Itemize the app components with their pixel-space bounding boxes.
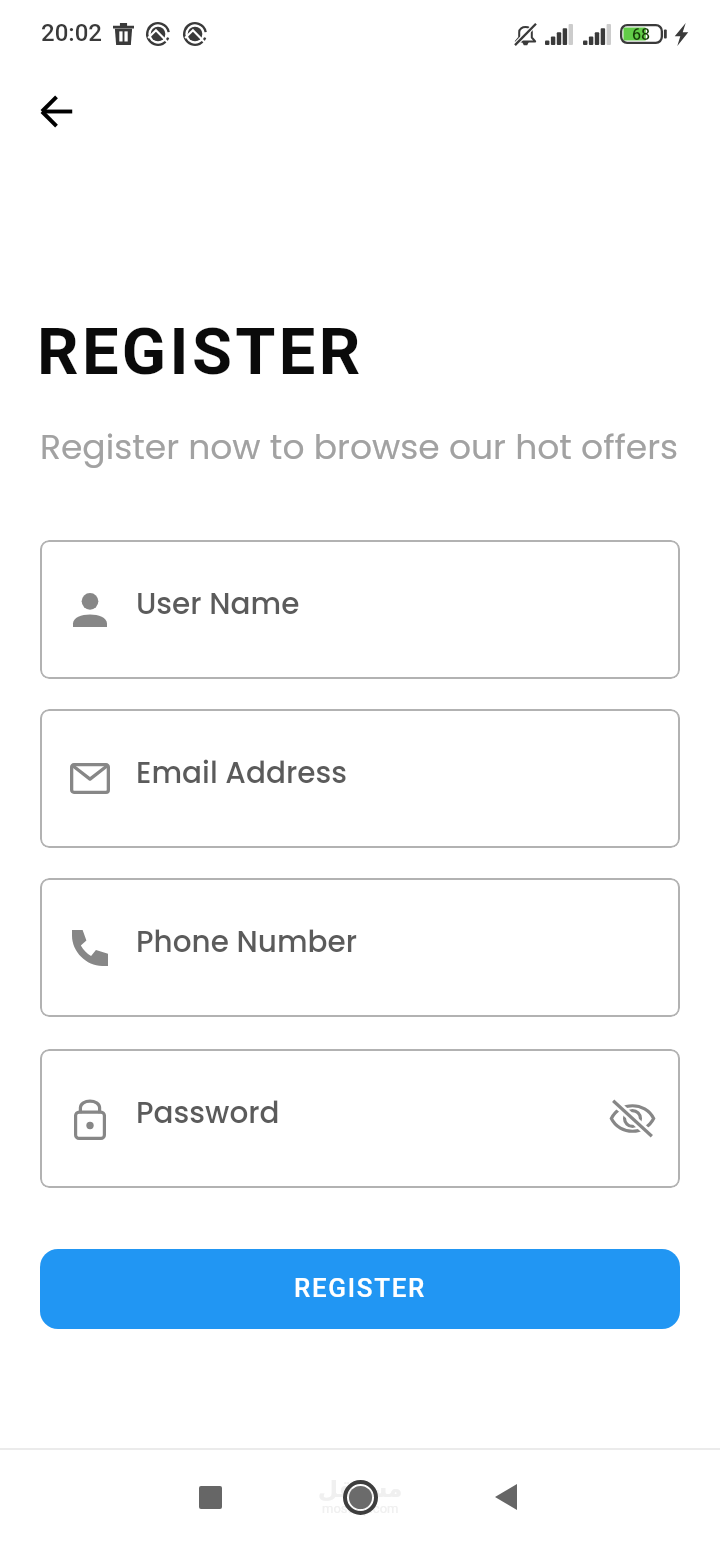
button[interactable]: Email Address <box>40 709 680 848</box>
button[interactable]: Home <box>320 1448 400 1544</box>
button[interactable]: Phone Number <box>40 878 680 1017</box>
staticText: User Name <box>136 583 300 679</box>
staticText: REGISTER <box>37 314 364 390</box>
staticText: Register now to browse our hot offers <box>40 423 679 471</box>
staticText: Email Address <box>136 752 347 848</box>
button[interactable]: Show password <box>602 1049 662 1188</box>
staticText: REGISTER <box>294 1273 427 1303</box>
button[interactable]: Back <box>466 1448 546 1544</box>
staticText: 68 <box>632 25 651 44</box>
button[interactable]: User Name <box>40 540 680 679</box>
staticText: 20:02 <box>41 19 102 47</box>
staticText: mostaql.com <box>322 1501 399 1516</box>
staticText: مستقل <box>318 1476 403 1503</box>
button[interactable]: Recent apps <box>170 1448 250 1544</box>
button[interactable]: REGISTER <box>40 1249 680 1329</box>
button[interactable]: Back <box>22 77 90 145</box>
staticText: Phone Number <box>136 921 358 1017</box>
staticText: Password <box>136 1092 280 1188</box>
button[interactable]: Password <box>40 1049 680 1188</box>
